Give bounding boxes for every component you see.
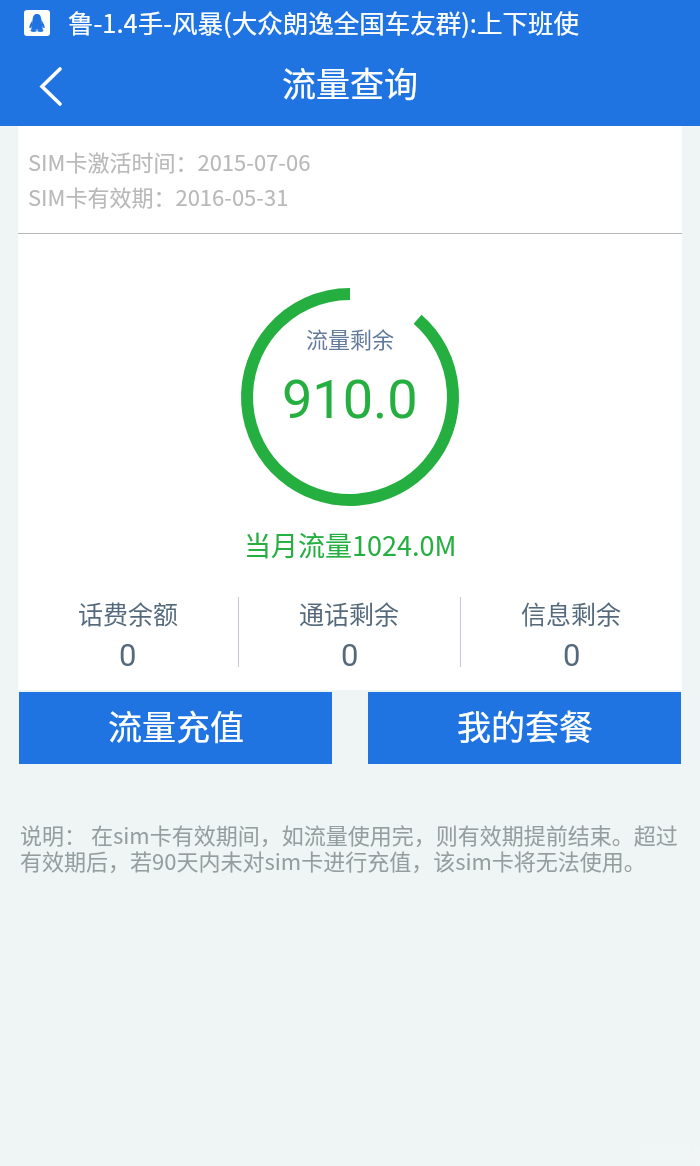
staticText: SIM卡有效期：2016-05-31 [28, 180, 289, 212]
staticText: 话费余额 [78, 595, 179, 631]
button[interactable]: 信息剩余 [461, 593, 682, 673]
staticText: 0 [119, 637, 137, 673]
staticText: 流量查询 [282, 58, 418, 107]
staticText: SIM卡激活时间：2015-07-06 [28, 145, 311, 177]
button[interactable]: Back [16, 51, 86, 121]
staticText: 流量充值 [108, 701, 244, 750]
staticText: 信息剩余 [521, 595, 622, 631]
staticText: 910.0 [282, 368, 418, 431]
staticText: 说明： 在sim卡有效期间，如流量使用完，则有效期提前结束。超过有效期后，若90… [20, 818, 682, 876]
staticText: 0 [563, 637, 581, 673]
button[interactable]: 通话剩余 [239, 593, 460, 673]
staticText: 我的套餐 [457, 701, 593, 750]
staticText: 通话剩余 [299, 595, 400, 631]
button[interactable]: 流量充值 [19, 692, 332, 764]
staticText: 流量剩余 [306, 322, 395, 354]
button[interactable]: 话费余额 [18, 593, 238, 673]
staticText: 鲁-1.4手-风暴(大众朗逸全国车友群):上下班使 [68, 3, 579, 40]
button[interactable]: 我的套餐 [368, 692, 681, 764]
staticText: 0 [341, 637, 359, 673]
staticText: 当月流量1024.0M [244, 525, 457, 564]
